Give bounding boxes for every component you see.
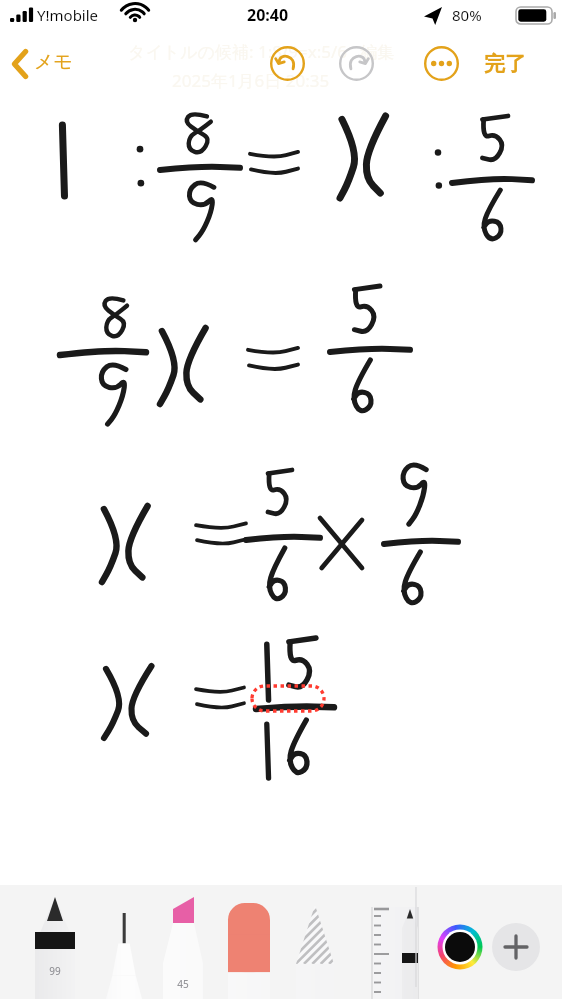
staticText: 20:40	[247, 4, 289, 26]
button[interactable]: Pencil	[295, 885, 335, 999]
button[interactable]: Undo	[270, 46, 305, 81]
button[interactable]: Fine pen	[104, 885, 144, 999]
button[interactable]: Tool	[398, 885, 438, 999]
button[interactable]: Highlighter	[163, 885, 203, 999]
button[interactable]: Pen	[35, 885, 75, 999]
staticText: 完了	[484, 51, 526, 77]
staticText: メモ	[34, 50, 73, 74]
staticText: タイトルの候補: 1:8/9=x:5/6 編集	[128, 40, 395, 63]
staticText: Y!mobile	[37, 5, 99, 25]
staticText: 45	[173, 977, 193, 991]
button[interactable]: More options	[424, 46, 459, 81]
button[interactable]: Crayon	[229, 885, 269, 999]
staticText: 99	[45, 964, 65, 978]
staticText: 2025年1月6日 20:35	[172, 69, 330, 92]
button[interactable]: Color picker	[436, 923, 484, 971]
staticText: 80%	[452, 5, 482, 25]
button[interactable]: メモ	[4, 42, 104, 86]
button[interactable]: 完了	[480, 42, 552, 86]
button[interactable]: Add tool	[492, 923, 540, 971]
button[interactable]: Ruler	[370, 885, 410, 999]
button[interactable]: Redo	[339, 46, 374, 81]
